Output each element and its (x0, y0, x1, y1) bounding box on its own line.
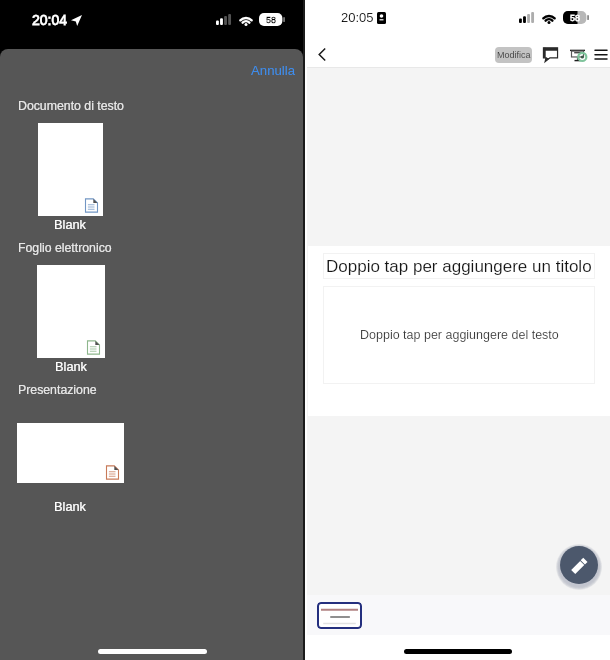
button[interactable]: Modifica (495, 47, 532, 63)
staticText: 20:05 (341, 10, 374, 25)
staticText: Blank (54, 499, 87, 513)
staticText: Annulla (251, 63, 295, 78)
staticText: Presentazione (18, 383, 97, 397)
button[interactable]: Back (309, 41, 335, 67)
button[interactable] (38, 123, 103, 216)
staticText: Blank (54, 217, 87, 231)
button[interactable]: Comment (539, 43, 562, 66)
staticText: Doppio tap per aggiungere un titolo (326, 257, 592, 276)
button[interactable] (17, 423, 124, 483)
button[interactable]: Doppio tap per aggiungere un titolo (308, 246, 610, 416)
staticText: Doppio tap per aggiungere del testo (360, 328, 559, 342)
staticText: Foglio elettronico (18, 241, 112, 255)
button[interactable] (37, 265, 105, 358)
staticText: 58 (570, 13, 581, 23)
staticText: Modifica (497, 50, 531, 60)
button[interactable]: Edit (560, 546, 598, 584)
button[interactable]: Present (566, 43, 589, 66)
staticText: 58 (266, 15, 277, 25)
staticText: Documento di testo (18, 99, 124, 113)
staticText: Blank (55, 359, 88, 373)
staticText: 20:04 (32, 12, 68, 28)
button[interactable]: Annulla (245, 58, 301, 83)
button[interactable] (317, 602, 362, 629)
button[interactable]: Menu (589, 43, 610, 66)
